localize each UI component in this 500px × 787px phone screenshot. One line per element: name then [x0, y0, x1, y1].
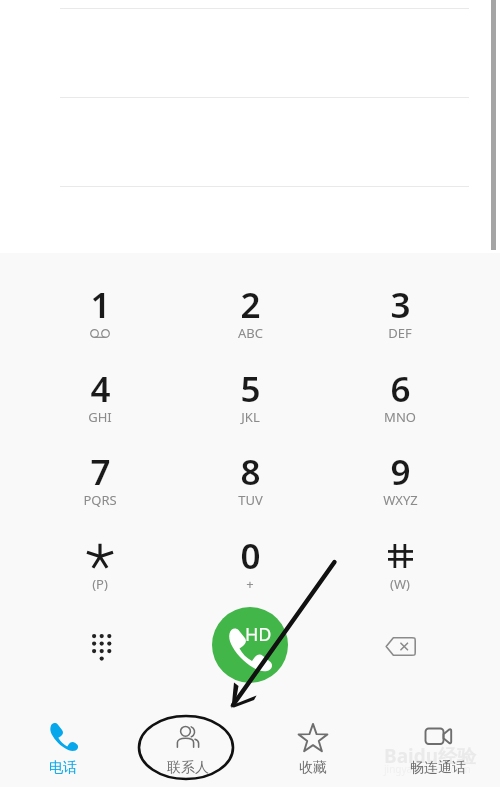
staticText: 2: [240, 281, 261, 329]
staticText: 收藏: [299, 759, 327, 777]
staticText: HD: [245, 622, 272, 647]
staticText: ABC: [238, 324, 263, 342]
staticText: GHI: [88, 408, 112, 426]
staticText: 0: [240, 532, 261, 580]
staticText: 1: [90, 281, 111, 329]
button[interactable]: 4: [54, 363, 146, 441]
staticText: 3: [390, 281, 411, 329]
staticText: 7: [90, 448, 111, 496]
staticText: jingyan.baidu.com: [384, 762, 471, 776]
button[interactable]: (P): [54, 530, 146, 608]
button[interactable]: 3: [354, 279, 446, 357]
staticText: Baidu经验: [384, 743, 477, 769]
button[interactable]: 0: [204, 530, 296, 608]
button[interactable]: 联系人: [125, 700, 250, 787]
staticText: 联系人: [167, 759, 209, 777]
staticText: DEF: [388, 324, 412, 342]
button[interactable]: (W): [354, 530, 446, 608]
button[interactable]: 8: [204, 446, 296, 524]
staticText: MNO: [384, 408, 416, 426]
staticText: 电话: [49, 759, 77, 777]
staticText: TUV: [238, 491, 263, 509]
staticText: 6: [390, 365, 411, 413]
button[interactable]: Hide keypad: [75, 621, 125, 671]
button[interactable]: 6: [354, 363, 446, 441]
staticText: JKL: [241, 408, 260, 426]
button[interactable]: 电话: [0, 700, 125, 787]
button[interactable]: 畅连通话: [375, 700, 500, 787]
button[interactable]: 7: [54, 446, 146, 524]
staticText: 8: [240, 448, 261, 496]
staticText: 9: [390, 448, 411, 496]
staticText: 4: [90, 365, 111, 413]
staticText: (W): [390, 575, 410, 593]
staticText: WXYZ: [383, 491, 418, 509]
button[interactable]: 2: [204, 279, 296, 357]
button[interactable]: Delete: [375, 621, 425, 671]
staticText: 5: [240, 365, 261, 413]
button[interactable]: 9: [354, 446, 446, 524]
button[interactable]: 5: [204, 363, 296, 441]
button[interactable]: Call: [212, 607, 288, 683]
staticText: (P): [92, 575, 108, 593]
staticText: +: [246, 575, 254, 593]
staticText: PQRS: [83, 491, 117, 509]
button[interactable]: 收藏: [250, 700, 375, 787]
staticText: 畅连通话: [410, 759, 466, 777]
button[interactable]: 1: [54, 279, 146, 357]
